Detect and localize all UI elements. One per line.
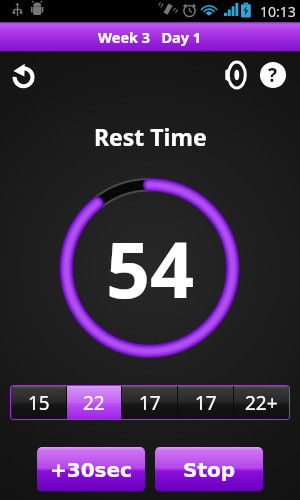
staticText: 15 bbox=[28, 390, 50, 416]
staticText: +30sec bbox=[50, 458, 132, 481]
staticText: Rest Time bbox=[94, 121, 207, 152]
staticText: 54 bbox=[106, 216, 195, 321]
staticText: 22+ bbox=[245, 390, 278, 416]
button[interactable]: Help bbox=[256, 58, 290, 92]
button[interactable]: Stop bbox=[155, 447, 263, 492]
staticText: 22 bbox=[83, 390, 105, 416]
button[interactable]: Restart bbox=[6, 58, 40, 92]
staticText: 17 bbox=[139, 390, 161, 416]
button[interactable]: +30sec bbox=[37, 447, 145, 492]
button[interactable]: 17 bbox=[122, 386, 177, 419]
staticText: ? bbox=[268, 62, 278, 88]
button[interactable]: 22 bbox=[67, 386, 121, 419]
button[interactable]: 22+ bbox=[234, 386, 289, 419]
staticText: Week 3 Day 1 bbox=[98, 27, 202, 47]
staticText: Stop bbox=[183, 458, 236, 481]
button[interactable]: Sound bbox=[218, 58, 252, 92]
button[interactable]: 17 bbox=[178, 386, 233, 419]
staticText: 10:13 bbox=[260, 2, 296, 21]
button[interactable]: 15 bbox=[11, 386, 66, 419]
staticText: 17 bbox=[195, 390, 217, 416]
